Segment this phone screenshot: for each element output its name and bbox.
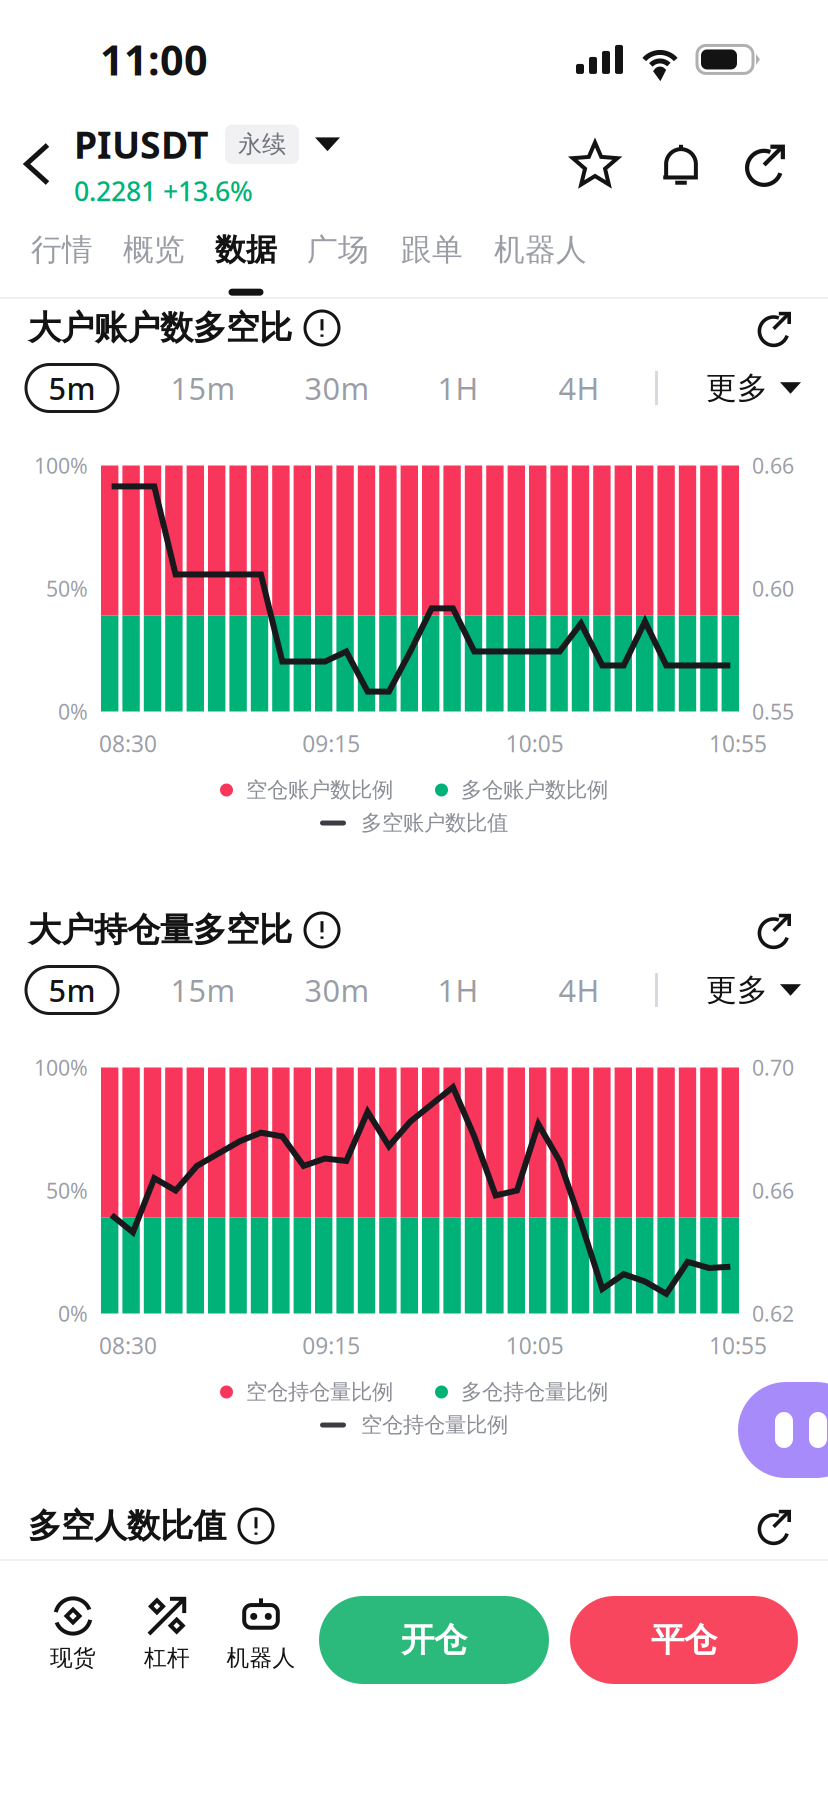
staticText: 100% [34, 1053, 88, 1082]
staticText: 11:00 [100, 32, 208, 87]
staticText: 永续 [238, 130, 286, 159]
staticText: 空仓持仓量比例 [246, 1379, 393, 1405]
button[interactable]: Favorite [564, 133, 626, 195]
staticText: 开仓 [401, 1619, 467, 1660]
button[interactable]: 杠杆 [120, 1595, 214, 1685]
button[interactable]: Back [0, 112, 74, 216]
staticText: 空仓持仓量比例 [361, 1412, 508, 1438]
staticText: 杠杆 [144, 1644, 190, 1672]
staticText: 0.60 [752, 574, 794, 603]
button[interactable]: 机器人 [494, 216, 587, 296]
button[interactable]: 概览 [123, 216, 185, 296]
button[interactable]: 更多 [706, 364, 801, 411]
staticText: 多空账户数比值 [361, 810, 508, 836]
staticText: 4H [558, 368, 599, 408]
staticText: 0.70 [752, 1053, 794, 1082]
staticText: 10:55 [709, 1330, 767, 1360]
staticText: 30m [304, 368, 369, 408]
button[interactable]: 现货 [26, 1595, 120, 1685]
button[interactable]: 15m [166, 364, 240, 411]
staticText: 跟单 [401, 231, 463, 269]
staticText: 4H [558, 970, 599, 1010]
button[interactable]: 数据 [215, 216, 277, 296]
button[interactable]: 30m [300, 966, 374, 1013]
staticText: 10:05 [506, 1330, 564, 1360]
staticText: 0.62 [752, 1299, 794, 1328]
button[interactable]: 5m [26, 364, 118, 411]
staticText: 机器人 [494, 231, 587, 269]
button[interactable]: 15m [166, 966, 240, 1013]
staticText: 多仓持仓量比例 [461, 1379, 608, 1405]
staticText: 100% [34, 451, 88, 480]
staticText: 09:15 [302, 728, 360, 758]
staticText: 更多 [706, 369, 768, 407]
button[interactable]: 跟单 [401, 216, 463, 296]
staticText: 数据 [215, 231, 277, 269]
button[interactable]: Open full chart [750, 302, 802, 354]
button[interactable]: 开仓 [319, 1596, 549, 1684]
button[interactable]: 30m [300, 364, 374, 411]
staticText: 1H [437, 368, 478, 408]
staticText: 大户账户数多空比 [28, 307, 292, 348]
button[interactable]: 行情 [31, 216, 93, 296]
staticText: 1H [437, 970, 478, 1010]
staticText: 机器人 [226, 1644, 295, 1672]
button[interactable]: 1H [434, 364, 482, 411]
staticText: 50% [46, 574, 88, 603]
staticText: 10:05 [506, 728, 564, 758]
button[interactable]: 5m [26, 966, 118, 1013]
staticText: 空仓账户数比例 [246, 777, 393, 803]
staticText: 0.66 [752, 451, 794, 480]
staticText: 大户持仓量多空比 [28, 909, 292, 950]
staticText: 15m [170, 368, 235, 408]
staticText: 广场 [307, 231, 369, 269]
button[interactable]: Assistant [738, 1382, 828, 1478]
staticText: 08:30 [99, 1330, 157, 1360]
staticText: 多空人数比值 [28, 1505, 226, 1546]
staticText: 0% [58, 697, 88, 726]
staticText: 平仓 [651, 1619, 717, 1660]
button[interactable]: Open full chart [750, 1500, 802, 1552]
staticText: 50% [46, 1176, 88, 1205]
staticText: 08:30 [99, 728, 157, 758]
button[interactable]: 机器人 [214, 1595, 308, 1685]
button[interactable]: 广场 [307, 216, 369, 296]
staticText: PIUSDT [74, 119, 209, 169]
staticText: 更多 [706, 971, 768, 1009]
button[interactable]: Price alert [650, 133, 712, 195]
staticText: 现货 [50, 1644, 96, 1672]
staticText: 0.66 [752, 1176, 794, 1205]
staticText: 行情 [31, 231, 93, 269]
staticText: 概览 [123, 231, 185, 269]
button[interactable]: 平仓 [570, 1596, 798, 1684]
staticText: 0.2281 +13.6% [74, 173, 253, 208]
button[interactable]: 1H [434, 966, 482, 1013]
button[interactable]: 更多 [706, 966, 801, 1013]
staticText: 10:55 [709, 728, 767, 758]
staticText: 09:15 [302, 1330, 360, 1360]
button[interactable]: Open full chart [750, 904, 802, 956]
button[interactable]: 4H [555, 966, 603, 1013]
button[interactable]: Share [736, 133, 798, 195]
button[interactable]: 4H [555, 364, 603, 411]
staticText: 15m [170, 970, 235, 1010]
staticText: 5m [48, 368, 95, 408]
staticText: 5m [48, 970, 95, 1010]
staticText: 0% [58, 1299, 88, 1328]
staticText: 多仓账户数比例 [461, 777, 608, 803]
staticText: 0.55 [752, 697, 794, 726]
staticText: 30m [304, 970, 369, 1010]
